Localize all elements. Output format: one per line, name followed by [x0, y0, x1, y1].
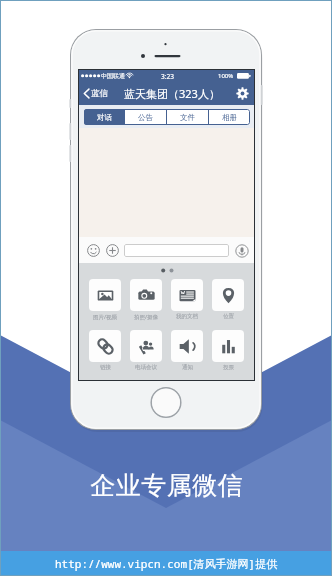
button[interactable]: Settings: [235, 86, 250, 101]
button[interactable]: Voice message: [233, 242, 250, 259]
staticText: 企业专属微信: [90, 470, 243, 501]
button[interactable]: Add: [104, 242, 120, 258]
staticText: 图片/视频: [93, 313, 118, 321]
button[interactable]: 电话会议: [130, 330, 162, 371]
button[interactable]: Emoji: [85, 242, 101, 258]
staticText: 位置: [223, 313, 234, 320]
staticText: 我的文档: [176, 313, 198, 320]
staticText: 蓝信: [91, 88, 108, 99]
staticText: 拍照/摄像: [134, 313, 159, 321]
button[interactable]: 链接: [89, 330, 121, 371]
button[interactable]: 公告: [125, 109, 166, 125]
button[interactable]: 通知: [171, 330, 203, 371]
staticText: 蓝天集团（323人）: [124, 86, 220, 101]
button[interactable]: 相册: [209, 109, 250, 125]
staticText: 对话: [97, 113, 112, 122]
button[interactable]: 我的文档: [171, 279, 203, 320]
button[interactable]: 投票: [212, 330, 244, 371]
button[interactable]: 对话: [84, 109, 124, 125]
staticText: http://www.vipcn.com[清风手游网]提供: [55, 556, 278, 571]
staticText: 3:23: [161, 72, 174, 81]
staticText: 公告: [138, 113, 153, 122]
staticText: 电话会议: [135, 364, 157, 371]
staticText: 中国联通: [101, 72, 125, 80]
button[interactable]: 蓝信: [82, 86, 109, 101]
staticText: 通知: [182, 364, 193, 371]
staticText: 100%: [218, 72, 234, 80]
staticText: 投票: [223, 364, 234, 371]
staticText: 链接: [100, 364, 111, 371]
button[interactable]: [124, 244, 229, 257]
staticText: 相册: [222, 113, 237, 122]
staticText: 文件: [180, 113, 195, 122]
button[interactable]: 图片/视频: [89, 279, 121, 321]
button[interactable]: 位置: [212, 279, 244, 320]
button[interactable]: 拍照/摄像: [130, 279, 162, 321]
button[interactable]: 文件: [167, 109, 208, 125]
